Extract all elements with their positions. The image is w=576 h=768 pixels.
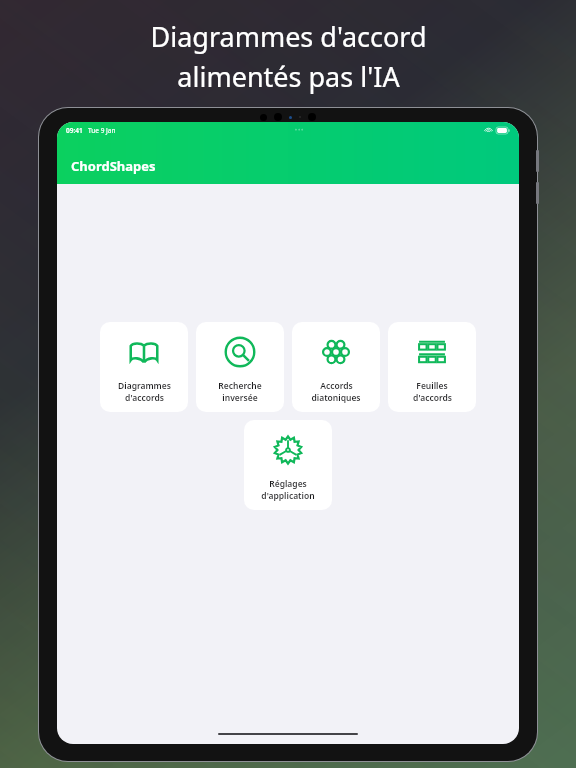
staticText: Tue 9 Jan bbox=[88, 126, 116, 135]
staticText: 09:41 bbox=[66, 126, 83, 135]
button[interactable]: Accords bbox=[292, 322, 380, 412]
staticText: diatoniques bbox=[311, 392, 361, 404]
staticText: Feuilles bbox=[416, 380, 448, 392]
staticText: Accords bbox=[320, 380, 353, 392]
button[interactable]: Feuilles bbox=[388, 322, 476, 412]
staticText: d'accords bbox=[125, 392, 164, 404]
button[interactable]: Diagrammes bbox=[100, 322, 188, 412]
staticText: Diagrammes d'accord bbox=[150, 18, 427, 55]
staticText: d'application bbox=[261, 490, 315, 502]
button[interactable]: Réglages bbox=[244, 420, 332, 510]
staticText: ChordShapes bbox=[71, 157, 156, 175]
staticText: inversée bbox=[222, 392, 258, 404]
staticText: • • • bbox=[295, 127, 304, 134]
button[interactable]: Recherche bbox=[196, 322, 284, 412]
staticText: Réglages bbox=[269, 478, 307, 490]
staticText: Recherche bbox=[218, 380, 262, 392]
staticText: d'accords bbox=[413, 392, 452, 404]
staticText: Diagrammes bbox=[118, 380, 171, 392]
staticText: alimentés pas l'IA bbox=[177, 58, 400, 95]
